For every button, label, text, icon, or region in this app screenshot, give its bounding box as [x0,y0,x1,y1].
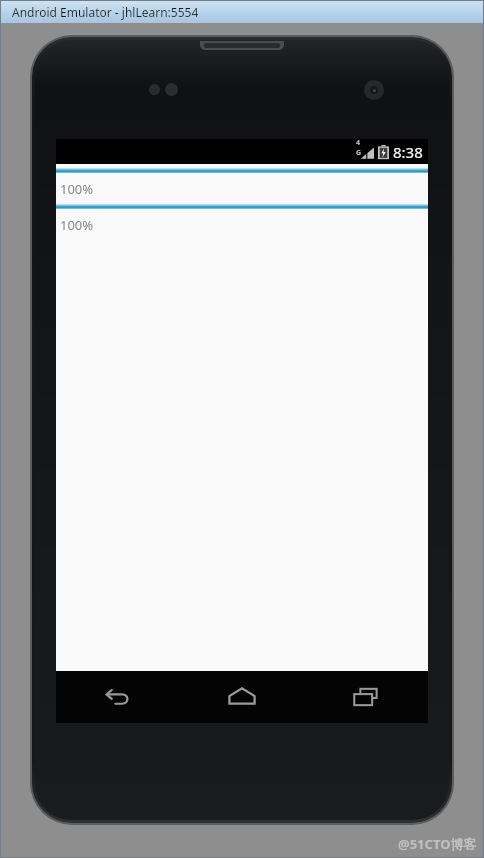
staticText: 100% [60,216,94,234]
button[interactable] [56,167,428,174]
button[interactable]: Home [180,671,304,723]
button[interactable]: 100% [56,210,428,239]
staticText: 100% [60,180,94,198]
button[interactable]: Back [56,671,180,723]
button[interactable] [56,203,428,210]
staticText: 8:38 [393,142,423,162]
staticText: @51CTO博客 [398,835,477,853]
button[interactable]: Recent apps [304,671,428,723]
staticText: Android Emulator - jhlLearn:5554 [12,4,199,20]
button[interactable]: 100% [56,174,428,203]
